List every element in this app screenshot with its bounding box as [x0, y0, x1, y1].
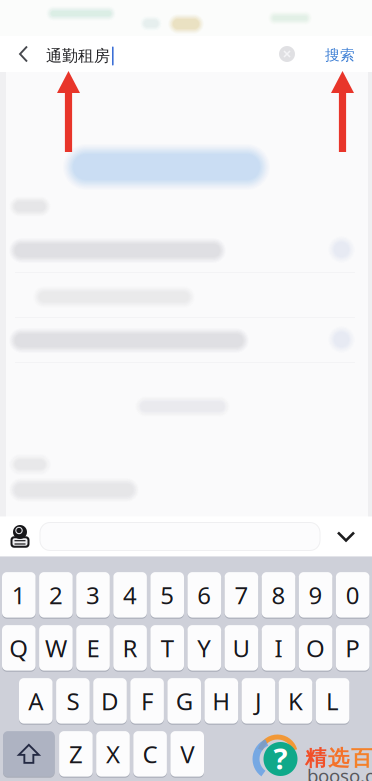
staticText: G	[176, 685, 193, 717]
button[interactable]: F	[130, 677, 164, 724]
staticText: X	[106, 738, 120, 770]
staticText: Y	[197, 632, 211, 664]
staticText: K	[288, 685, 303, 717]
staticText: L	[326, 685, 339, 717]
button[interactable]: 3	[76, 571, 110, 618]
staticText: 选	[328, 745, 349, 771]
button[interactable]: R	[113, 624, 147, 671]
button[interactable]: 2	[39, 571, 73, 618]
staticText: U	[232, 632, 250, 664]
staticText: P	[345, 632, 360, 664]
button[interactable]: P	[336, 624, 369, 671]
staticText: 0	[346, 579, 360, 611]
staticText: D	[101, 685, 119, 717]
button[interactable]: G	[167, 677, 201, 724]
button[interactable]: 6	[187, 571, 221, 618]
button[interactable]: Q	[2, 624, 36, 671]
button[interactable]: W	[39, 624, 73, 671]
button[interactable]: 0	[336, 571, 369, 618]
staticText: S	[66, 685, 79, 717]
button[interactable]: H	[204, 677, 238, 724]
staticText: 6	[197, 579, 211, 611]
button[interactable]: S	[56, 677, 90, 724]
staticText: 5	[160, 579, 174, 611]
staticText: Z	[69, 738, 83, 770]
staticText: C	[143, 738, 158, 770]
button[interactable]: V	[170, 730, 204, 777]
staticText: 1	[12, 579, 26, 611]
button[interactable]: 7	[225, 571, 258, 618]
button[interactable]: Z	[59, 730, 93, 777]
button[interactable]: K	[279, 677, 312, 724]
button[interactable]: Shift	[3, 730, 55, 777]
button[interactable]: L	[316, 677, 349, 724]
button[interactable]: 4	[113, 571, 147, 618]
staticText: 8	[271, 579, 285, 611]
staticText: 通勤租房	[46, 46, 110, 66]
button[interactable]: Clear text	[271, 36, 303, 72]
staticText: H	[212, 685, 230, 717]
staticText: J	[255, 685, 262, 717]
button[interactable]: X	[96, 730, 130, 777]
staticText: R	[123, 632, 138, 664]
staticText: 精	[305, 745, 326, 771]
button[interactable]: A	[19, 677, 53, 724]
button[interactable]: Hide keyboard	[320, 516, 372, 556]
staticText: booso.com	[307, 763, 372, 781]
staticText: W	[45, 632, 67, 664]
staticText: 3	[86, 579, 100, 611]
staticText: I	[274, 632, 282, 664]
button[interactable]: E	[76, 624, 110, 671]
staticText: V	[180, 738, 194, 770]
staticText: 搜索	[325, 46, 355, 64]
staticText: Q	[9, 632, 28, 664]
staticText: 2	[49, 579, 63, 611]
button[interactable]: U	[225, 624, 258, 671]
staticText: 百	[351, 745, 372, 771]
staticText: ?	[273, 738, 287, 777]
staticText: 9	[309, 579, 323, 611]
button[interactable]: Back	[0, 36, 38, 72]
button[interactable]: 5	[150, 571, 184, 618]
staticText: T	[161, 632, 174, 664]
button[interactable]: 1	[2, 571, 36, 618]
button[interactable]: J	[242, 677, 275, 724]
staticText: 7	[234, 579, 248, 611]
button[interactable]: O	[299, 624, 332, 671]
staticText: 4	[123, 579, 137, 611]
button[interactable]: 搜索	[318, 37, 362, 73]
button[interactable]: I	[262, 624, 295, 671]
button[interactable]: 8	[262, 571, 295, 618]
staticText: E	[86, 632, 99, 664]
button[interactable]: Switch keyboard	[0, 516, 40, 556]
button[interactable]: 9	[299, 571, 332, 618]
staticText: F	[141, 685, 153, 717]
button[interactable]: Y	[187, 624, 221, 671]
button[interactable]: D	[93, 677, 127, 724]
staticText: A	[28, 685, 43, 717]
button[interactable]: T	[150, 624, 184, 671]
staticText: O	[306, 632, 325, 664]
button[interactable]: C	[133, 730, 167, 777]
